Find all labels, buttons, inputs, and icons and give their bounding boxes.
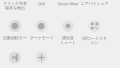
staticText: ダークモード — [29, 35, 53, 40]
button[interactable]: QRコードスキ — [79, 35, 109, 45]
button[interactable]: Scan QR code — [88, 20, 100, 32]
staticText: 自動回転モー — [3, 35, 27, 40]
button[interactable]: ダークモード — [26, 35, 56, 45]
staticText: QRコードスキ — [82, 35, 107, 41]
staticText: ミュート — [60, 40, 76, 45]
button[interactable]: Smart View — [53, 1, 83, 11]
button[interactable]: Add — [35, 51, 47, 63]
staticText: ャン — [90, 40, 98, 45]
button[interactable]: Mute — [62, 20, 74, 32]
button[interactable]: 自動回転モー — [0, 35, 30, 45]
button[interactable]: Dell — [26, 1, 56, 11]
staticText: 端末を検出 — [5, 5, 25, 10]
button[interactable]: Share — [9, 51, 21, 63]
staticText: Dell — [38, 1, 45, 6]
button[interactable]: ニアバイシェア — [79, 1, 109, 11]
button[interactable]: Auto rotate — [9, 20, 21, 32]
staticText: 通知音 — [62, 35, 74, 40]
staticText: クイック共有 — [3, 1, 27, 6]
button[interactable]: Dark mode — [35, 20, 47, 32]
button[interactable]: クイック共有 — [0, 1, 30, 11]
staticText: ニアバイシェア — [80, 1, 108, 6]
staticText: Smart View — [58, 1, 78, 6]
button[interactable]: 通知音 — [53, 35, 83, 45]
